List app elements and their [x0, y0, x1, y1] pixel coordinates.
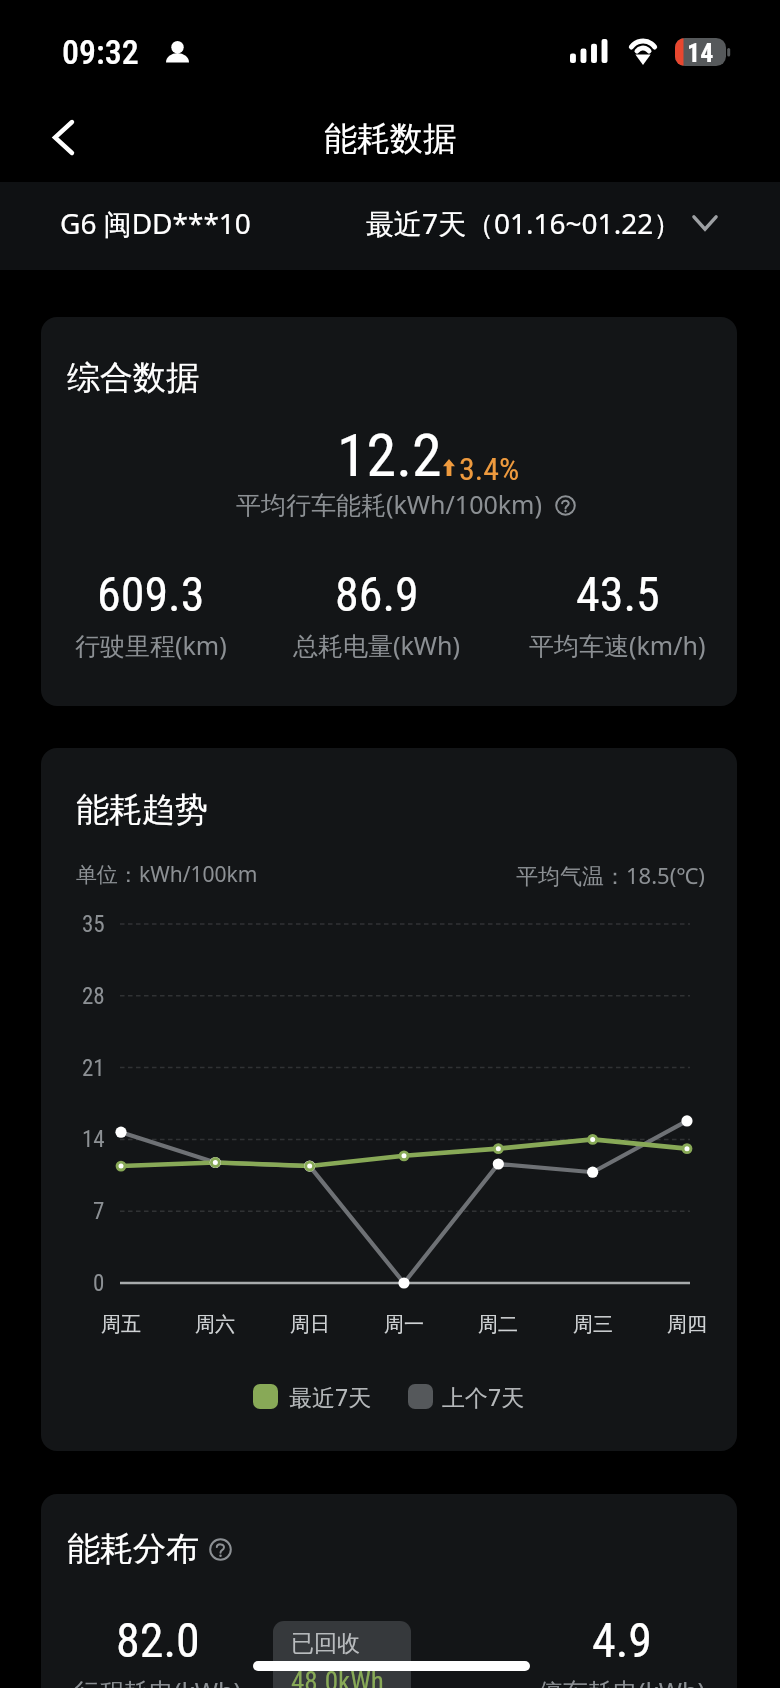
staticText: 周四 — [667, 1312, 707, 1337]
staticText: 总耗电量(kWh) — [293, 628, 461, 662]
staticText: 86.9 — [335, 566, 419, 622]
staticText: 09:32 — [62, 32, 139, 72]
staticText: 周日 — [290, 1312, 330, 1337]
staticText: 7 — [93, 1198, 105, 1225]
staticText: 平均车速(km/h) — [529, 628, 706, 662]
staticText: 周一 — [384, 1312, 424, 1337]
staticText: 行驶里程(km) — [75, 628, 227, 662]
staticText: 上个7天 — [442, 1381, 525, 1412]
staticText: 停车耗电(kWh) — [538, 1674, 706, 1688]
staticText: 行程耗电(kWh) — [74, 1674, 242, 1688]
staticText: 609.3 — [97, 566, 205, 622]
staticText: 35 — [82, 911, 105, 938]
staticText: 14 — [687, 38, 714, 66]
staticText: 能耗分布 — [67, 1528, 199, 1570]
staticText: 综合数据 — [67, 357, 199, 399]
staticText: 3.4% — [459, 450, 520, 488]
staticText: 0 — [93, 1270, 105, 1297]
staticText: 43.5 — [576, 566, 660, 622]
staticText: 28 — [82, 983, 105, 1010]
staticText: 能耗趋势 — [76, 789, 208, 831]
staticText: 周三 — [573, 1312, 613, 1337]
staticText: 最近7天（01.16~01.22） — [366, 204, 682, 242]
button[interactable]: 最近7天（01.16~01.22） — [358, 196, 720, 250]
staticText: 平均气温：18.5(℃) — [516, 860, 705, 890]
staticText: 4.9 — [592, 1612, 653, 1668]
staticText: 单位：kWh/100km — [76, 860, 258, 889]
staticText: 82.0 — [116, 1612, 200, 1668]
staticText: G6 闽DD***10 — [60, 204, 251, 242]
button[interactable]: Back — [33, 107, 93, 167]
staticText: 最近7天 — [289, 1381, 372, 1412]
staticText: 已回收 — [291, 1629, 360, 1658]
staticText: 48.0kWh — [291, 1666, 384, 1688]
staticText: 平均行车能耗(kWh/100km) — [236, 487, 542, 521]
staticText: 能耗数据 — [324, 118, 456, 160]
staticText: 14 — [82, 1126, 105, 1153]
staticText: 周六 — [195, 1312, 235, 1337]
staticText: 周二 — [478, 1312, 518, 1337]
staticText: 12.2 — [337, 420, 442, 490]
staticText: 21 — [82, 1055, 105, 1082]
staticText: 周五 — [101, 1312, 141, 1337]
